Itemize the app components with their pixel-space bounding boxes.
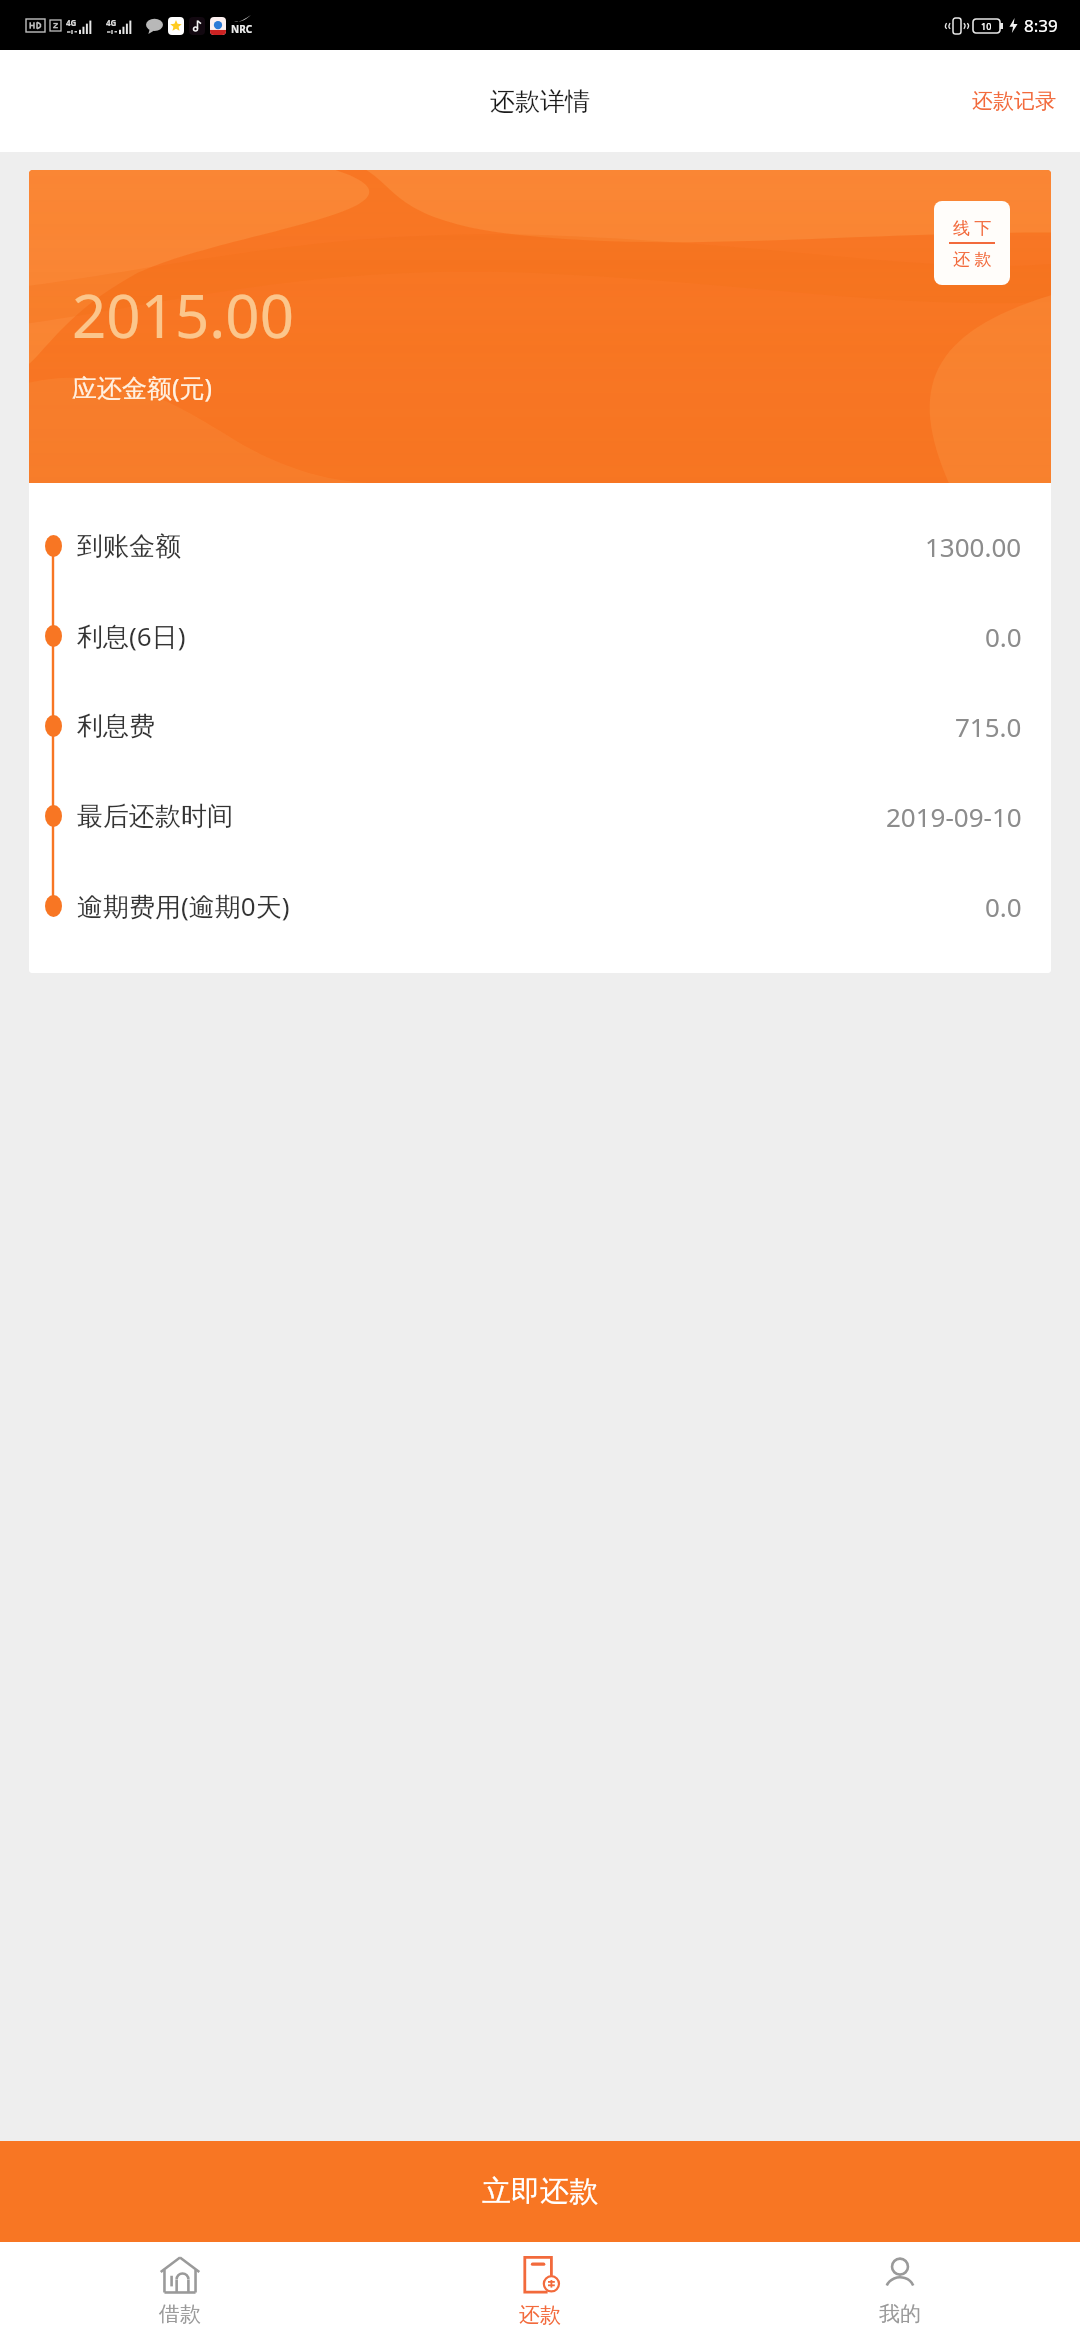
button[interactable]: 最后还款时间 <box>29 771 1051 861</box>
staticText: 我的 <box>879 2301 921 2327</box>
staticText: 利息(6日) <box>77 618 186 654</box>
staticText: 借款 <box>159 2301 201 2327</box>
button[interactable]: 还款 <box>360 2245 720 2338</box>
button[interactable]: 我的 <box>720 2246 1080 2337</box>
staticText: 2015.00 <box>72 274 294 356</box>
staticText: 2019-09-10 <box>886 799 1022 834</box>
staticText: 最后还款时间 <box>77 800 233 833</box>
staticText: 应还金额(元) <box>72 370 213 404</box>
staticText: 逾期费用(逾期0天) <box>77 888 290 924</box>
staticText: 10 <box>981 20 992 32</box>
staticText: 还款记录 <box>972 88 1056 114</box>
staticText: 715.0 <box>955 709 1022 744</box>
button[interactable]: 利息费 <box>29 681 1051 771</box>
staticText: 8:39 <box>1024 14 1058 37</box>
staticText: NRC <box>231 22 253 36</box>
staticText: 0.0 <box>985 889 1022 924</box>
button[interactable]: 逾期费用(逾期0天) <box>29 861 1051 951</box>
staticText: 1300.00 <box>925 529 1022 564</box>
staticText: 利息费 <box>77 710 155 743</box>
staticText: 还款详情 <box>490 86 590 117</box>
button[interactable]: 还款记录 <box>948 74 1080 128</box>
other: 我的 <box>881 2256 919 2294</box>
staticText: 线 下 <box>953 216 992 239</box>
staticText: 0.0 <box>985 619 1022 654</box>
staticText: 4G <box>106 17 117 28</box>
button[interactable]: 借款 <box>0 2246 360 2337</box>
staticText: 4G <box>66 17 77 28</box>
button[interactable]: 利息(6日) <box>29 591 1051 681</box>
button[interactable]: 立即还款 <box>0 2141 1080 2242</box>
staticText: 还 款 <box>953 247 992 270</box>
staticText: 还款 <box>519 2302 561 2328</box>
button[interactable]: 线 下 <box>934 201 1010 285</box>
staticText: 立即还款 <box>482 2173 598 2210</box>
staticText: 到账金额 <box>77 530 181 563</box>
button[interactable]: 到账金额 <box>29 501 1051 591</box>
